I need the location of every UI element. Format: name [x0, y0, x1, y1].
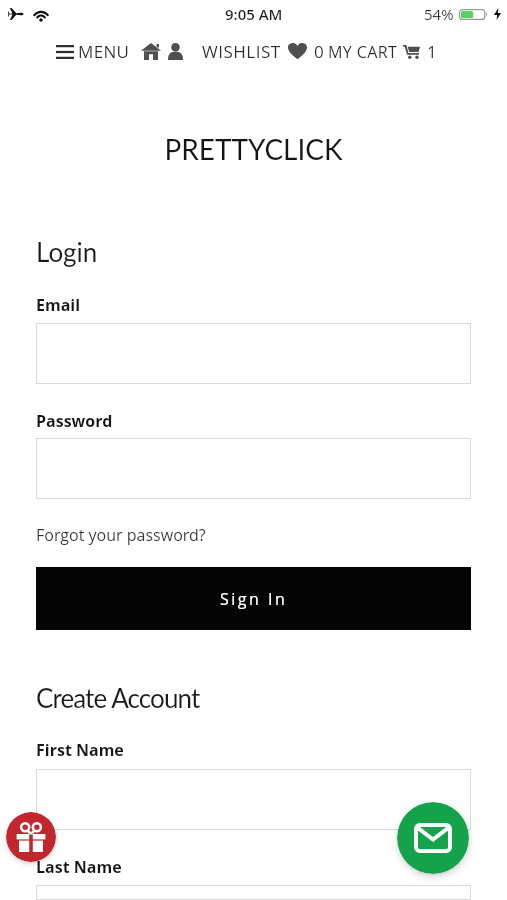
staticText: Login — [36, 236, 98, 267]
button[interactable]: WISHLIST — [202, 40, 324, 63]
button[interactable] — [397, 802, 469, 874]
staticText: Email — [36, 294, 81, 316]
staticText: Create Account — [36, 682, 200, 713]
button[interactable] — [141, 43, 161, 60]
button[interactable] — [6, 812, 56, 862]
staticText: First Name — [36, 739, 124, 761]
button[interactable] — [167, 43, 184, 60]
staticText: MENU — [78, 40, 130, 63]
staticText: 1 — [427, 40, 437, 63]
staticText: WISHLIST — [202, 40, 281, 63]
staticText: 9:05 AM — [225, 4, 283, 24]
staticText: MY CART — [328, 41, 398, 63]
staticText: Sign In — [220, 588, 288, 610]
staticText: Last Name — [36, 856, 122, 878]
staticText: 54% — [424, 4, 454, 24]
button[interactable]: Sign In — [36, 567, 471, 630]
staticText: PRETTYCLICK — [0, 132, 507, 166]
button[interactable]: MY CART — [328, 40, 437, 63]
button[interactable]: Forgot your password? — [36, 524, 206, 546]
staticText: Password — [36, 410, 113, 432]
staticText: 0 — [314, 40, 324, 63]
button[interactable]: MENU — [56, 40, 130, 63]
